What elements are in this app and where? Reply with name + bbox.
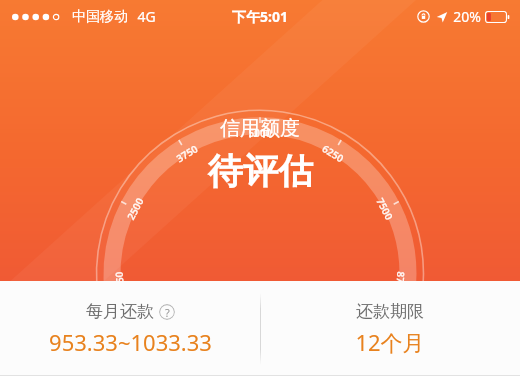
staticText: 20% (453, 7, 481, 26)
staticText: 信用额度 (220, 116, 300, 141)
button[interactable]: 帮助 (159, 304, 175, 320)
button[interactable]: 每月还款 (0, 281, 260, 376)
staticText: 12个月 (355, 327, 425, 357)
staticText: 中国移动 (72, 8, 128, 26)
staticText: 还款期限 (356, 301, 424, 322)
staticText: ? (165, 305, 170, 320)
staticText: 待评估 (208, 149, 313, 193)
staticText: 每月还款 (86, 301, 154, 322)
button[interactable]: 还款期限 (260, 281, 520, 376)
staticText: 953.33~1033.33 (49, 327, 212, 357)
staticText: 4G (137, 7, 156, 26)
staticText: 下午5:01 (232, 7, 288, 26)
